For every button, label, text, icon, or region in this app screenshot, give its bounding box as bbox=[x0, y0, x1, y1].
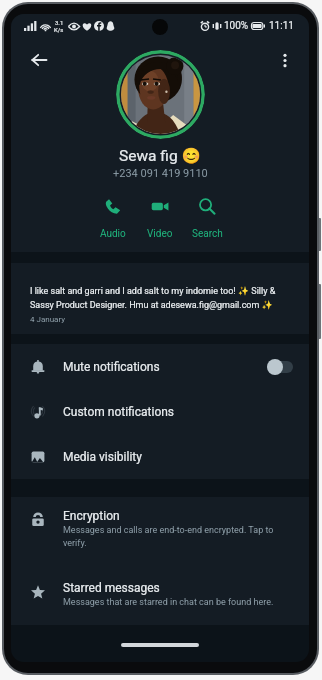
staticText: Search bbox=[192, 228, 223, 240]
staticText: Mute notifications bbox=[63, 360, 160, 374]
staticText: 100% bbox=[224, 20, 249, 32]
staticText: Media visibility bbox=[63, 450, 142, 464]
button[interactable]: Encryption bbox=[11, 505, 309, 552]
button[interactable]: Media visibility bbox=[11, 434, 309, 479]
button[interactable]: Profile photo bbox=[116, 50, 205, 139]
staticText: Starred messages bbox=[63, 581, 160, 595]
staticText: 4 January bbox=[30, 315, 65, 324]
staticText: 3.1 bbox=[55, 19, 64, 26]
button[interactable]: Starred messages bbox=[11, 577, 309, 612]
button[interactable]: Custom notifications bbox=[11, 389, 309, 434]
staticText: Messages and calls are end-to-end encryp… bbox=[63, 525, 285, 548]
staticText: Video bbox=[147, 228, 173, 240]
button[interactable]: More options bbox=[273, 48, 297, 72]
staticText: Audio bbox=[100, 228, 126, 240]
staticText: +234 091 419 9110 bbox=[113, 167, 208, 180]
button[interactable]: Back bbox=[25, 46, 53, 74]
button[interactable]: I like salt and garri and I add salt to … bbox=[11, 263, 309, 334]
staticText: Messages that are starred in chat can be… bbox=[63, 597, 274, 608]
staticText: K/s bbox=[54, 26, 64, 33]
button[interactable]: Mute notifications bbox=[11, 344, 309, 389]
staticText: Custom notifications bbox=[63, 405, 175, 419]
staticText: I like salt and garri and I add salt to … bbox=[30, 286, 288, 310]
staticText: Encryption bbox=[63, 509, 120, 523]
staticText: Sewa fig 😊 bbox=[119, 147, 201, 165]
button[interactable]: Video bbox=[141, 196, 179, 242]
staticText: 11:11 bbox=[269, 20, 294, 32]
button[interactable]: Audio bbox=[94, 196, 132, 242]
button[interactable]: Search bbox=[188, 196, 226, 242]
